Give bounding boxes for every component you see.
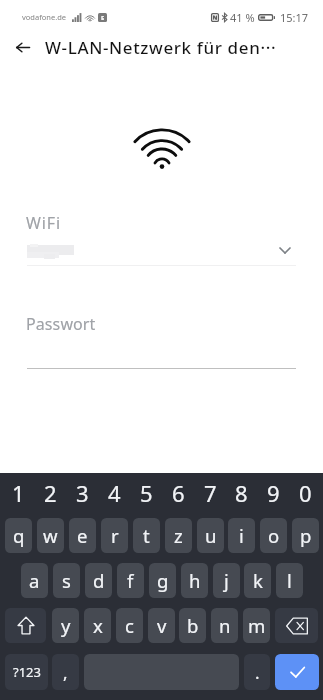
button[interactable]: 1 xyxy=(5,470,32,515)
staticText: t xyxy=(143,523,150,548)
button[interactable]: c xyxy=(116,608,143,643)
button[interactable]: Back xyxy=(0,33,45,62)
staticText: m xyxy=(248,613,266,638)
staticText: w xyxy=(43,523,58,548)
button[interactable]: s xyxy=(53,563,80,598)
staticText: 4 xyxy=(108,478,121,508)
staticText: WiFi xyxy=(26,212,62,234)
staticText: 1 xyxy=(12,478,25,508)
button[interactable]: y xyxy=(52,608,79,643)
button[interactable]: p xyxy=(292,518,319,553)
button[interactable]: x xyxy=(84,608,111,643)
button[interactable]: Choose network xyxy=(272,238,298,262)
staticText: n xyxy=(219,613,231,638)
staticText: i xyxy=(239,523,244,548)
button[interactable]: t xyxy=(133,518,160,553)
staticText: E xyxy=(101,14,105,22)
staticText: 0 xyxy=(299,478,312,508)
staticText: 6 xyxy=(172,478,185,508)
button[interactable]: Shift xyxy=(5,608,46,643)
button[interactable]: 2 xyxy=(37,470,64,515)
button[interactable]: Enter xyxy=(275,654,319,690)
staticText: W-LAN-Netzwerk für den··· xyxy=(45,36,277,59)
staticText: k xyxy=(253,568,263,593)
staticText: d xyxy=(93,568,105,593)
button[interactable]: z xyxy=(165,518,192,553)
button[interactable]: 6 xyxy=(165,470,192,515)
button[interactable]: 7 xyxy=(197,470,224,515)
staticText: 3 xyxy=(76,478,89,508)
button[interactable]: e xyxy=(69,518,96,553)
staticText: u xyxy=(205,523,217,548)
staticText: y xyxy=(61,613,71,638)
staticText: 7 xyxy=(204,478,217,508)
staticText: e xyxy=(77,523,88,548)
button[interactable]: h xyxy=(181,563,208,598)
button[interactable]: f xyxy=(117,563,144,598)
button[interactable]: 3 xyxy=(69,470,96,515)
staticText: 9 xyxy=(267,478,280,508)
staticText: . xyxy=(255,661,260,684)
button[interactable]: w xyxy=(37,518,64,553)
staticText: a xyxy=(29,568,40,593)
staticText: g xyxy=(157,568,169,593)
staticText: b xyxy=(187,613,199,638)
button[interactable]: k xyxy=(244,563,271,598)
button[interactable]: 9 xyxy=(260,470,287,515)
button[interactable]: ?123 xyxy=(5,654,48,690)
button[interactable]: 5 xyxy=(133,470,160,515)
staticText: 15:17 xyxy=(280,10,309,25)
staticText: s xyxy=(62,568,71,593)
button[interactable]: i xyxy=(228,518,255,553)
button[interactable]: v xyxy=(148,608,175,643)
button[interactable]: 0 xyxy=(292,470,319,515)
button[interactable]: d xyxy=(85,563,112,598)
button[interactable]: l xyxy=(276,563,303,598)
button[interactable]: g xyxy=(149,563,176,598)
button[interactable]: o xyxy=(260,518,287,553)
button[interactable]: 4 xyxy=(101,470,128,515)
staticText: 8 xyxy=(235,478,248,508)
button[interactable]: u xyxy=(197,518,224,553)
button[interactable]: , xyxy=(52,654,79,690)
staticText: r xyxy=(111,523,119,548)
staticText: h xyxy=(189,568,201,593)
staticText: x xyxy=(93,613,103,638)
staticText: 2 xyxy=(44,478,57,508)
button[interactable]: q xyxy=(5,518,32,553)
staticText: z xyxy=(174,523,183,548)
button[interactable]: m xyxy=(243,608,270,643)
staticText: f xyxy=(127,568,134,593)
staticText: ?123 xyxy=(13,663,41,681)
staticText: Passwort xyxy=(26,313,96,335)
button[interactable]: b xyxy=(179,608,206,643)
staticText: c xyxy=(125,613,134,638)
button[interactable]: n xyxy=(211,608,238,643)
button[interactable]: a xyxy=(21,563,48,598)
button[interactable]: j xyxy=(213,563,240,598)
button[interactable]: . xyxy=(244,654,270,690)
button[interactable]: 8 xyxy=(228,470,255,515)
staticText: v xyxy=(157,613,167,638)
staticText: l xyxy=(287,568,292,593)
staticText: j xyxy=(224,568,229,593)
staticText: p xyxy=(300,523,312,548)
button[interactable]: r xyxy=(101,518,128,553)
staticText: 5 xyxy=(140,478,153,508)
staticText: 41 % xyxy=(230,10,255,25)
staticText: q xyxy=(13,523,25,548)
staticText: o xyxy=(268,523,280,548)
staticText: , xyxy=(63,661,68,684)
button[interactable]: Backspace xyxy=(275,608,318,643)
staticText: vodafone.de xyxy=(22,12,67,22)
